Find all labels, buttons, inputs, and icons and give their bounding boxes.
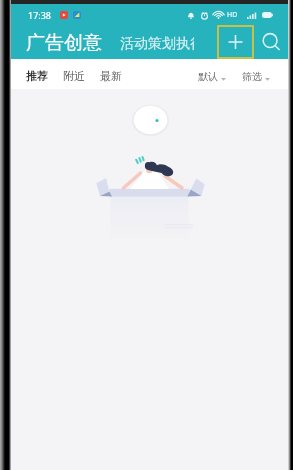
staticText: 推荐 xyxy=(26,69,48,83)
staticText: 17:38 xyxy=(28,9,52,21)
button[interactable]: 推荐 xyxy=(26,63,48,89)
staticText: 筛选 xyxy=(242,70,262,83)
button[interactable]: 默认 xyxy=(198,64,226,89)
button[interactable]: 附近 xyxy=(63,63,85,89)
button[interactable]: Search xyxy=(254,25,288,59)
staticText: 最新 xyxy=(100,69,122,83)
staticText: 活动策划执行 xyxy=(120,35,194,52)
button[interactable]: 筛选 xyxy=(242,64,270,89)
staticText: 广告创意 xyxy=(26,31,102,55)
button[interactable]: Add xyxy=(218,26,253,58)
staticText: 附近 xyxy=(63,69,85,83)
staticText: HD xyxy=(227,10,238,20)
staticText: 默认 xyxy=(198,70,218,83)
button[interactable]: 最新 xyxy=(100,63,122,89)
